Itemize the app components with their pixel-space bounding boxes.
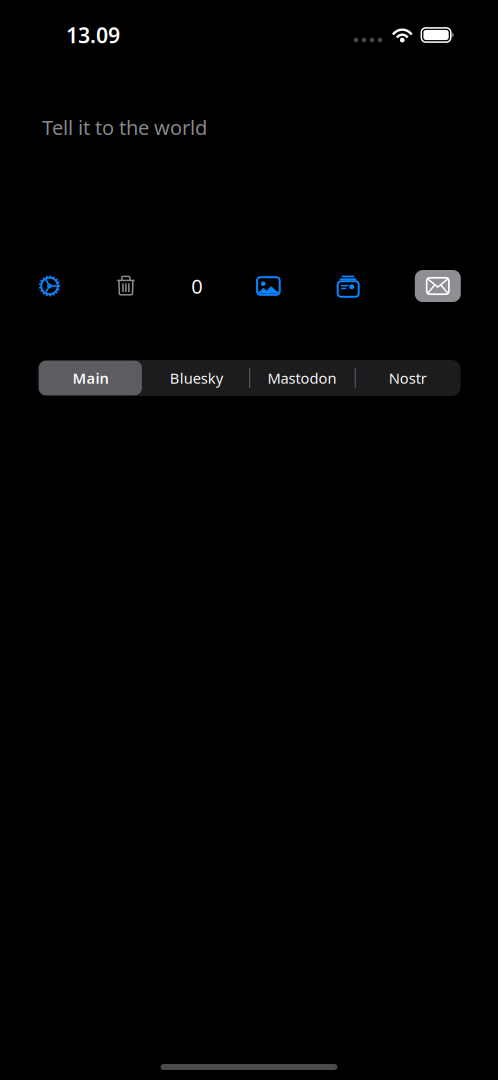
button[interactable]: Send — [415, 270, 461, 302]
button[interactable]: Cards — [322, 264, 374, 308]
button[interactable]: Tell it to the world — [0, 52, 498, 264]
staticText: Tell it to the world — [42, 114, 207, 141]
button[interactable]: Nostr — [355, 360, 461, 396]
button[interactable]: Main — [37, 360, 143, 396]
button[interactable]: Settings — [23, 264, 75, 308]
staticText: 0 — [191, 273, 202, 299]
staticText: Main — [72, 368, 108, 388]
staticText: Nostr — [389, 368, 427, 388]
button[interactable]: Delete — [100, 264, 152, 308]
staticText: 13.09 — [66, 21, 120, 49]
button[interactable]: Mastodon — [249, 360, 355, 396]
button[interactable]: Add photo — [242, 264, 294, 308]
staticText: Mastodon — [267, 368, 336, 388]
staticText: Bluesky — [170, 368, 223, 388]
button[interactable]: Bluesky — [143, 360, 249, 396]
